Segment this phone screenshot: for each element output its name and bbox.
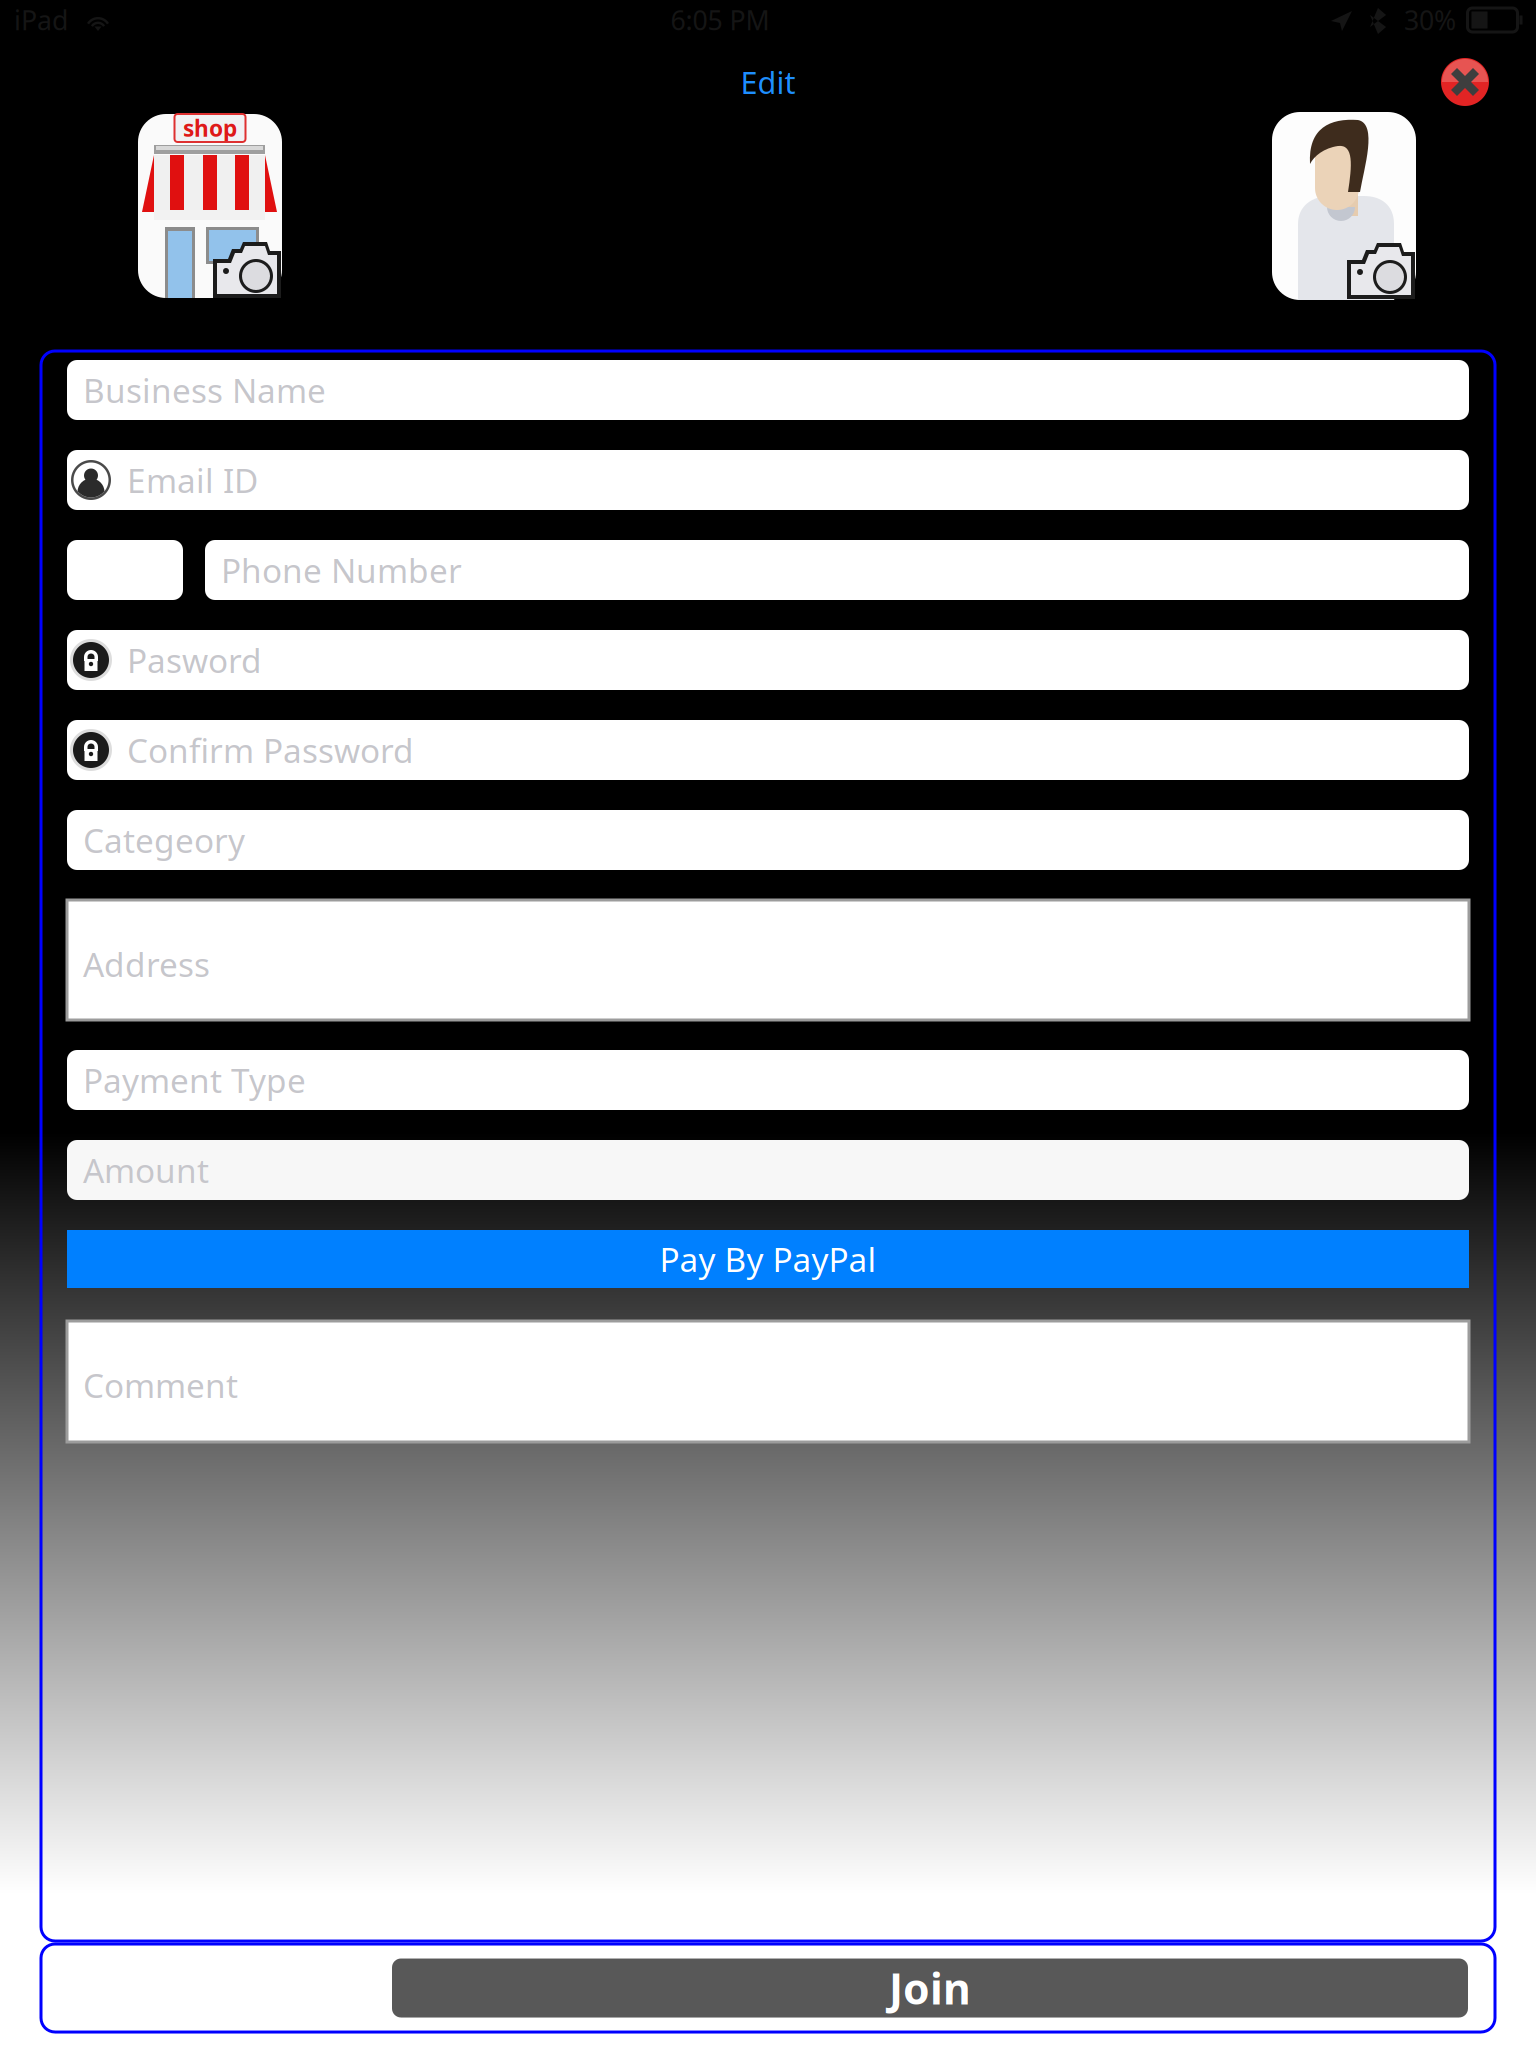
button[interactable]: Pasword [67, 630, 1469, 690]
button[interactable]: Payment Type [67, 1050, 1469, 1110]
button[interactable]: Comment [67, 1321, 1469, 1442]
button[interactable]: Join [392, 1958, 1468, 2017]
staticText: Business Name [83, 368, 326, 412]
button[interactable]: Business Name [67, 360, 1469, 420]
button[interactable]: Email ID [67, 450, 1469, 510]
staticText: Pay By PayPal [659, 1237, 876, 1281]
button[interactable]: Categeory [67, 810, 1469, 870]
button[interactable]: Change shop photo [136, 111, 284, 301]
button[interactable]: Close [1437, 54, 1493, 110]
staticText: Payment Type [83, 1058, 306, 1102]
staticText: Join [889, 1960, 971, 2016]
staticText: Address [83, 942, 210, 986]
button[interactable]: Change profile photo [1270, 110, 1418, 302]
staticText: Edit [740, 62, 795, 102]
staticText: Categeory [83, 818, 245, 862]
button[interactable]: Amount [67, 1140, 1469, 1200]
staticText: iPad [14, 2, 68, 38]
staticText: Comment [83, 1363, 238, 1407]
button[interactable]: Edit [688, 54, 848, 110]
staticText: 6:05 PM [670, 2, 769, 38]
staticText: Phone Number [221, 548, 462, 592]
button[interactable]: Pay By PayPal [67, 1230, 1469, 1288]
button[interactable]: Phone Number [205, 540, 1469, 600]
button[interactable]: Address [67, 900, 1469, 1020]
staticText: Amount [83, 1148, 209, 1192]
staticText: Email ID [127, 458, 258, 502]
button[interactable]: Confirm Password [67, 720, 1469, 780]
staticText: Pasword [127, 638, 262, 682]
staticText: 30% [1404, 2, 1456, 38]
staticText: Confirm Password [127, 728, 414, 772]
staticText: shop [183, 113, 237, 143]
button[interactable] [67, 540, 183, 600]
